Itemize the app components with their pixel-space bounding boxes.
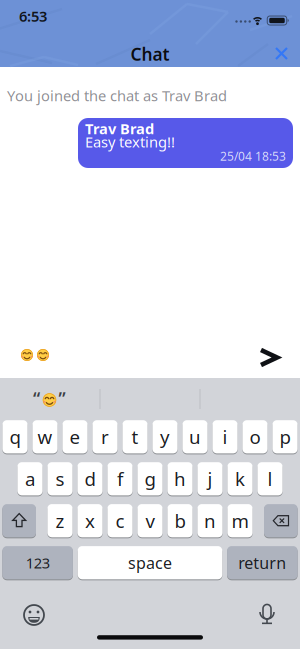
staticText: Trav Brad bbox=[85, 119, 154, 138]
staticText: e bbox=[69, 424, 80, 449]
button[interactable]: return bbox=[227, 546, 298, 579]
button[interactable]: e bbox=[62, 420, 88, 453]
button[interactable]: “smiling face” bbox=[1, 378, 99, 418]
staticText: l bbox=[267, 466, 272, 491]
button[interactable]: w bbox=[32, 420, 58, 453]
staticText: y bbox=[160, 424, 170, 449]
staticText: o bbox=[249, 424, 260, 449]
staticText: m bbox=[231, 508, 248, 533]
button[interactable]: Close bbox=[271, 43, 291, 63]
staticText: f bbox=[117, 466, 123, 491]
staticText: return bbox=[238, 552, 286, 573]
staticText: Chat bbox=[130, 42, 169, 65]
staticText: 6:53 bbox=[19, 6, 47, 26]
button[interactable]: f bbox=[107, 462, 133, 495]
button[interactable]: g bbox=[137, 462, 163, 495]
button[interactable]: t bbox=[122, 420, 148, 453]
button[interactable]: 123 bbox=[2, 546, 73, 579]
button[interactable]: d bbox=[77, 462, 103, 495]
button[interactable]: space bbox=[78, 546, 222, 579]
staticText: p bbox=[279, 424, 290, 449]
staticText: Easy texting!! bbox=[85, 132, 175, 152]
button[interactable]: p bbox=[272, 420, 298, 453]
button[interactable]: i bbox=[212, 420, 238, 453]
staticText: a bbox=[25, 466, 35, 491]
button[interactable]: x bbox=[77, 504, 103, 537]
button[interactable]: n bbox=[197, 504, 223, 537]
staticText: k bbox=[235, 466, 245, 491]
staticText: x bbox=[85, 508, 95, 533]
staticText: space bbox=[128, 552, 172, 573]
staticText: v bbox=[145, 508, 154, 533]
button[interactable]: y bbox=[152, 420, 178, 453]
staticText: ” bbox=[58, 387, 65, 410]
staticText: i bbox=[222, 424, 227, 449]
button[interactable]: o bbox=[242, 420, 268, 453]
staticText: z bbox=[55, 508, 64, 533]
button[interactable]: u bbox=[182, 420, 208, 453]
button[interactable]: b bbox=[167, 504, 193, 537]
button[interactable]: Shift bbox=[2, 504, 36, 537]
staticText: You joined the chat as Trav Brad bbox=[7, 86, 227, 105]
staticText: t bbox=[131, 424, 138, 449]
staticText: c bbox=[115, 508, 124, 533]
staticText: n bbox=[204, 508, 216, 533]
button[interactable]: r bbox=[92, 420, 118, 453]
button[interactable]: v bbox=[137, 504, 163, 537]
button[interactable]: Emoji bbox=[23, 604, 45, 626]
button[interactable]: m bbox=[227, 504, 253, 537]
staticText: 123 bbox=[26, 553, 50, 572]
button[interactable]: a bbox=[17, 462, 43, 495]
staticText: 25/04 18:53 bbox=[220, 148, 286, 164]
staticText: q bbox=[9, 424, 20, 449]
button[interactable]: Dictate bbox=[256, 603, 278, 625]
staticText: j bbox=[207, 466, 212, 491]
staticText: h bbox=[174, 466, 186, 491]
staticText: g bbox=[144, 466, 155, 491]
button[interactable]: Delete bbox=[264, 504, 298, 537]
staticText: “ bbox=[33, 387, 40, 410]
staticText: r bbox=[101, 424, 109, 449]
button[interactable]: j bbox=[197, 462, 223, 495]
button[interactable]: h bbox=[167, 462, 193, 495]
staticText: s bbox=[55, 466, 64, 491]
button[interactable]: s bbox=[47, 462, 73, 495]
button[interactable]: c bbox=[107, 504, 133, 537]
button[interactable]: q bbox=[2, 420, 28, 453]
staticText: w bbox=[37, 424, 52, 449]
staticText: b bbox=[174, 508, 185, 533]
button[interactable]: z bbox=[47, 504, 73, 537]
button[interactable]: k bbox=[227, 462, 253, 495]
button[interactable]: Send bbox=[258, 348, 279, 367]
staticText: u bbox=[189, 424, 201, 449]
staticText: d bbox=[84, 466, 95, 491]
button[interactable]: l bbox=[257, 462, 283, 495]
